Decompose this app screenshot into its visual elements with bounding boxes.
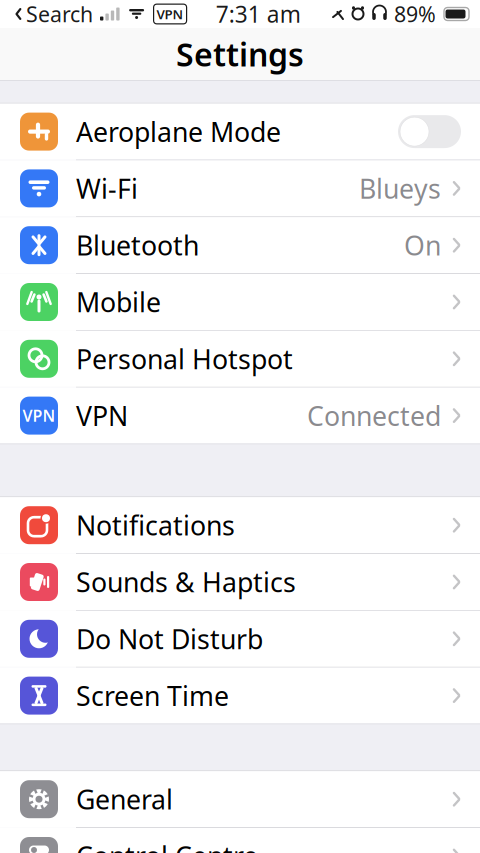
button[interactable]: Do Not Disturb [0, 611, 480, 667]
staticText: Search [26, 0, 93, 28]
button[interactable]: Bluetooth [0, 217, 480, 273]
staticText: 7:31 am [216, 0, 301, 29]
staticText: Connected [307, 398, 441, 433]
staticText: VPN [157, 5, 184, 23]
staticText: Bluetooth [76, 227, 199, 263]
staticText: Personal Hotspot [76, 341, 293, 376]
button[interactable]: General [0, 771, 480, 827]
staticText: Wi-Fi [76, 171, 138, 206]
staticText: VPN [76, 398, 128, 433]
staticText: VPN [22, 405, 55, 426]
staticText: Settings [176, 33, 304, 75]
button[interactable]: Aeroplane Mode [0, 104, 480, 160]
staticText: Control Centre [76, 838, 258, 853]
button[interactable]: VPN [0, 388, 480, 444]
staticText: Do Not Disturb [76, 621, 263, 656]
staticText: Mobile [76, 284, 161, 320]
staticText: Aeroplane Mode [76, 114, 281, 149]
button[interactable]: Notifications [0, 497, 480, 553]
staticText: On [404, 227, 441, 263]
staticText: 89% [394, 0, 436, 28]
staticText: Notifications [76, 507, 235, 543]
button[interactable]: Sounds & Haptics [0, 554, 480, 610]
staticText: General [76, 781, 173, 817]
button[interactable]: Wi-Fi [0, 160, 480, 216]
button[interactable]: Personal Hotspot [0, 331, 480, 387]
staticText: Sounds & Haptics [76, 564, 296, 600]
staticText: Blueys [359, 171, 441, 206]
staticText: Screen Time [76, 678, 229, 713]
button[interactable]: Control Centre [0, 828, 480, 853]
button[interactable]: Screen Time [0, 668, 480, 724]
button[interactable]: Mobile [0, 274, 480, 330]
